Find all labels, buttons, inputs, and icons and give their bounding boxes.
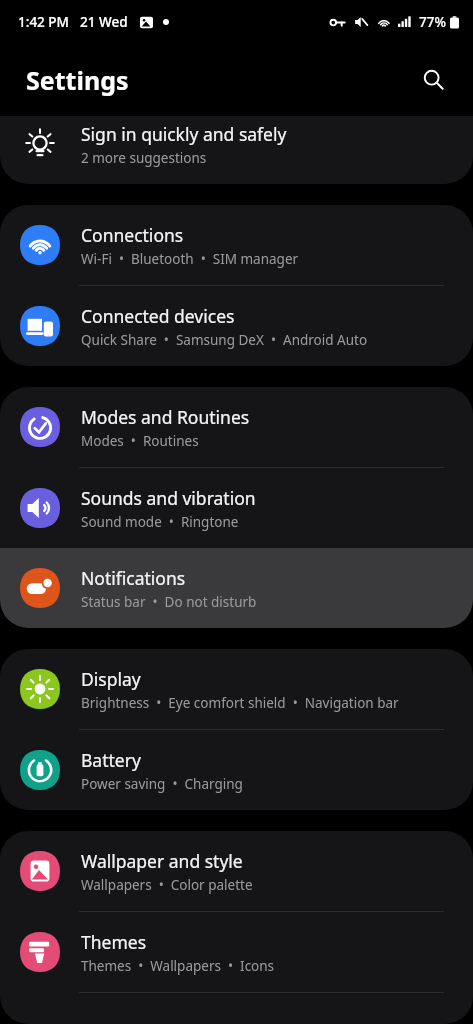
staticText: 1:42 PM xyxy=(18,13,69,31)
staticText: Brightness • Eye comfort shield • Naviga… xyxy=(81,694,399,712)
button[interactable]: Sounds and vibration xyxy=(0,468,473,548)
staticText: Battery xyxy=(81,748,141,772)
button[interactable]: Battery xyxy=(0,730,473,810)
button[interactable]: Connected devices xyxy=(0,286,473,366)
staticText: Wi-Fi • Bluetooth • SIM manager xyxy=(81,250,299,268)
staticText: Connected devices xyxy=(81,304,235,328)
button[interactable]: Notifications xyxy=(0,548,473,628)
staticText: Notifications xyxy=(81,566,186,590)
staticText: Modes and Routines xyxy=(81,405,250,429)
staticText: Modes • Routines xyxy=(81,432,199,450)
button[interactable]: Themes xyxy=(0,912,473,992)
staticText: Settings xyxy=(26,63,129,97)
staticText: 21 Wed xyxy=(80,13,128,31)
staticText: Status bar • Do not disturb xyxy=(81,593,257,611)
button[interactable]: Modes and Routines xyxy=(0,387,473,467)
staticText: Sign in quickly and safely xyxy=(81,122,287,146)
staticText: Display xyxy=(81,667,141,691)
staticText: Wallpapers • Color palette xyxy=(81,876,253,894)
staticText: Sound mode • Ringtone xyxy=(81,513,239,531)
button[interactable]: Search xyxy=(409,56,457,104)
button[interactable]: Wallpaper and style xyxy=(0,831,473,911)
staticText: 77% xyxy=(419,13,446,31)
button[interactable]: Display xyxy=(0,649,473,729)
staticText: Sounds and vibration xyxy=(81,486,256,510)
staticText: Connections xyxy=(81,223,184,247)
staticText: Themes • Wallpapers • Icons xyxy=(81,957,275,975)
button[interactable]: Sign in quickly and safely xyxy=(0,116,473,184)
button[interactable]: Connections xyxy=(0,205,473,285)
staticText: Power saving • Charging xyxy=(81,775,243,793)
staticText: Wallpaper and style xyxy=(81,849,243,873)
staticText: Quick Share • Samsung DeX • Android Auto xyxy=(81,331,368,349)
staticText: 2 more suggestions xyxy=(81,149,207,167)
staticText: Themes xyxy=(81,930,147,954)
